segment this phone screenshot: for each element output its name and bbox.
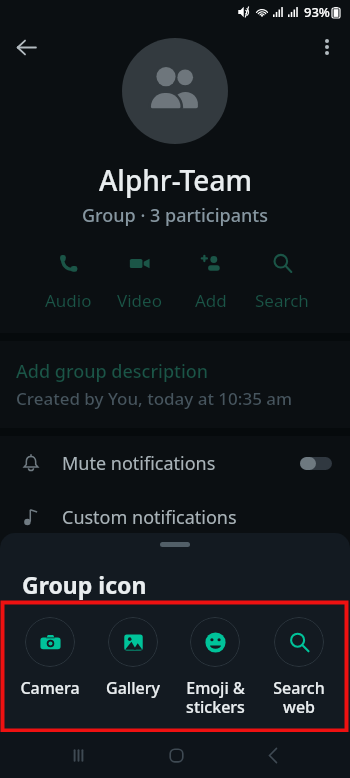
button[interactable]: Search web [259,617,339,718]
staticText: Add group description [16,359,209,384]
staticText: Gallery [106,677,160,699]
button[interactable]: More options [311,31,343,63]
staticText: Video [117,289,162,312]
staticText: Group icon [22,569,147,600]
staticText: Created by You, today at 10:35 am [16,387,293,410]
button[interactable]: Back [253,735,293,775]
staticText: Search [255,289,309,312]
staticText: Camera [20,677,80,699]
button[interactable]: Custom notifications [0,490,350,544]
button[interactable]: Recent apps [58,735,98,775]
staticText: Add [195,289,227,312]
staticText: Group · 3 participants [82,203,268,228]
button[interactable]: Mute notifications [0,436,350,490]
button[interactable]: Home [156,735,196,775]
staticText: Mute notifications [62,451,216,476]
staticText: Custom notifications [62,505,237,530]
staticText: 93% [304,3,330,21]
button[interactable]: Camera [10,617,90,699]
button[interactable]: Video [104,251,174,321]
staticText: Search web [273,677,325,718]
button[interactable]: Search [247,251,317,321]
staticText: Alphr-Team [99,161,252,199]
button[interactable]: Add [176,251,246,321]
button[interactable]: Gallery [93,617,173,699]
button[interactable]: Audio [33,251,103,321]
staticText: Audio [45,289,92,312]
button[interactable]: Add group description [0,359,350,410]
staticText: Emoji & stickers [186,677,245,718]
button[interactable]: Back [10,31,42,63]
button[interactable]: Emoji & stickers [175,617,255,718]
button[interactable]: Group photo [122,38,228,144]
